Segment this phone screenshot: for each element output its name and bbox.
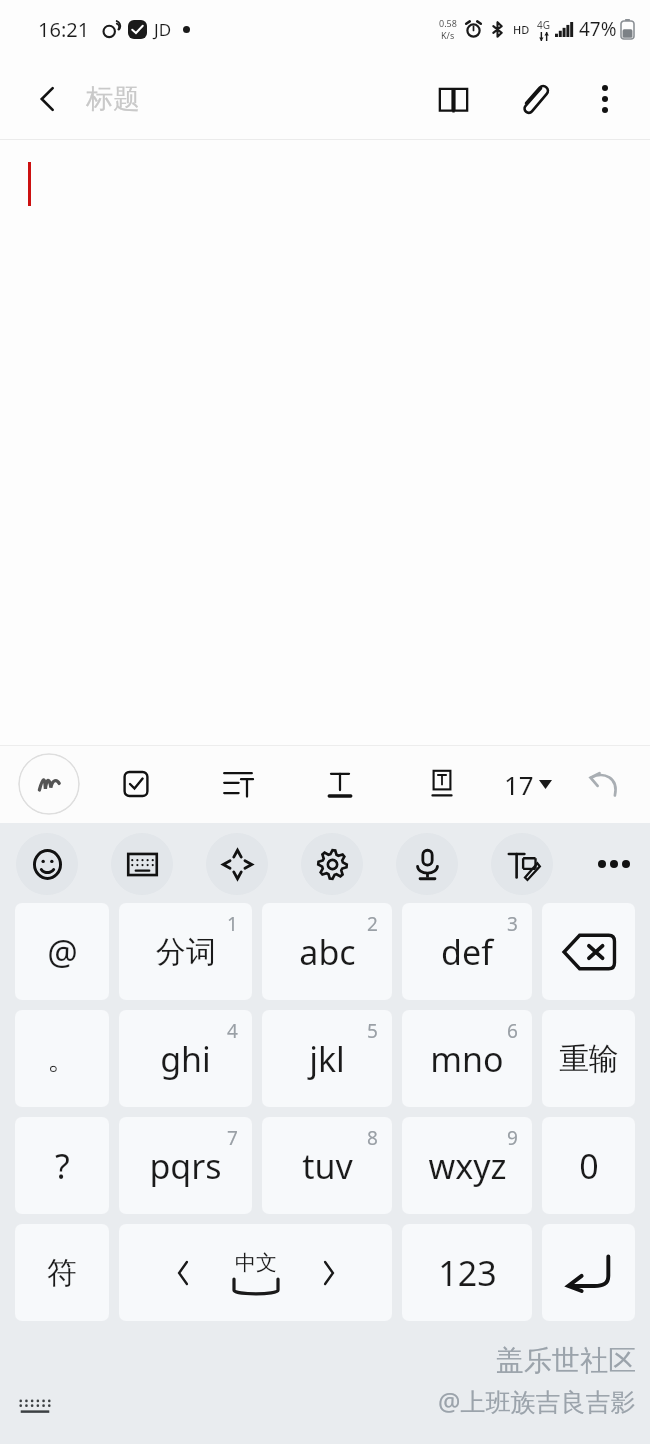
button[interactable]: Attach <box>504 70 562 128</box>
button[interactable]: 。 <box>15 1010 109 1107</box>
button[interactable]: 重输 <box>542 1010 635 1107</box>
staticText: ghi <box>160 1036 211 1082</box>
button[interactable]: 符 <box>15 1224 109 1321</box>
staticText: 6 <box>507 1018 518 1044</box>
staticText: 7 <box>227 1125 238 1151</box>
staticText: 2 <box>367 911 378 937</box>
button[interactable]: Back <box>20 71 76 127</box>
staticText: 0 <box>579 1143 599 1189</box>
button[interactable]: pqrs <box>119 1117 252 1214</box>
button[interactable]: Voice input <box>396 833 458 895</box>
button[interactable]: 分词 <box>119 903 252 1000</box>
staticText: tuv <box>302 1143 353 1189</box>
staticText: ? <box>55 1143 70 1189</box>
button[interactable]: tuv <box>262 1117 392 1214</box>
staticText: 4 <box>227 1018 238 1044</box>
staticText: 盖乐世社区 <box>496 1343 636 1378</box>
staticText: 符 <box>47 1254 77 1292</box>
button[interactable]: ghi <box>119 1010 252 1107</box>
button[interactable]: space <box>119 1224 392 1321</box>
staticText: 8 <box>367 1125 378 1151</box>
button[interactable]: enter <box>542 1224 635 1321</box>
staticText: mno <box>430 1036 504 1082</box>
button[interactable]: wxyz <box>402 1117 532 1214</box>
staticText: abc <box>299 929 356 975</box>
button[interactable]: Handwriting <box>18 753 80 815</box>
button[interactable]: 17 <box>500 761 556 808</box>
staticText: 标题 <box>86 82 140 116</box>
button[interactable]: Undo <box>578 758 630 810</box>
button[interactable]: 123 <box>402 1224 532 1321</box>
staticText: wxyz <box>428 1143 507 1189</box>
staticText: 分词 <box>156 933 216 971</box>
button[interactable]: backspace <box>542 903 635 1000</box>
button[interactable]: Settings <box>301 833 363 895</box>
staticText: HD <box>513 22 530 37</box>
button[interactable]: Cursor control <box>206 833 268 895</box>
staticText: 1 <box>227 911 238 937</box>
button[interactable]: Checklist <box>110 758 162 810</box>
staticText: 17 <box>504 767 534 802</box>
staticText: 47% <box>579 16 617 42</box>
button[interactable]: More options <box>578 72 632 126</box>
staticText: @上班族吉良吉影 <box>438 1384 636 1418</box>
staticText: 4G <box>537 18 550 32</box>
button[interactable]: Keyboard layout <box>111 833 173 895</box>
staticText: 3 <box>507 911 518 937</box>
button[interactable]: def <box>402 903 532 1000</box>
button[interactable]: Paragraph <box>212 758 264 810</box>
button[interactable]: Emoji <box>16 833 78 895</box>
button[interactable]: ? <box>15 1117 109 1214</box>
button[interactable]: Text box <box>416 758 468 810</box>
button[interactable]: abc <box>262 903 392 1000</box>
staticText: K/s <box>441 29 455 41</box>
button[interactable]: jkl <box>262 1010 392 1107</box>
staticText: 重输 <box>559 1040 619 1078</box>
staticText: pqrs <box>149 1143 222 1189</box>
staticText: 9 <box>507 1125 518 1151</box>
button[interactable]: More <box>586 836 642 892</box>
button[interactable]: 0 <box>542 1117 635 1214</box>
staticText: 5 <box>367 1018 378 1044</box>
button[interactable]: Text style <box>314 758 366 810</box>
staticText: 。 <box>47 1040 77 1078</box>
staticText: jkl <box>309 1036 345 1082</box>
staticText: 16:21 <box>38 16 90 43</box>
staticText: 123 <box>438 1250 497 1296</box>
button[interactable]: Handwriting <box>491 833 553 895</box>
staticText: 0.58 <box>439 17 457 29</box>
button[interactable]: Reading mode <box>424 70 482 128</box>
staticText: def <box>441 929 493 975</box>
staticText: @ <box>47 929 78 975</box>
staticText: JD <box>154 18 172 41</box>
staticText: 中文 <box>235 1250 277 1276</box>
button[interactable]: @ <box>15 903 109 1000</box>
button[interactable]: mno <box>402 1010 532 1107</box>
